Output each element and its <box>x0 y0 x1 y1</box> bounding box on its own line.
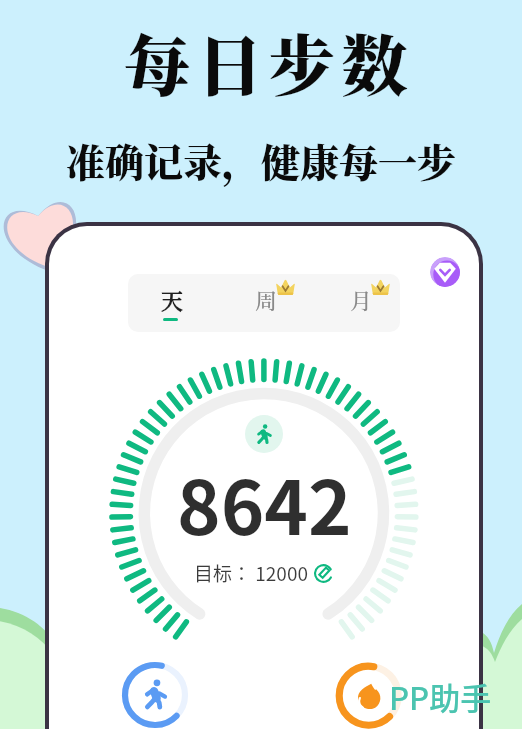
staticText: 每日步数 <box>124 14 414 109</box>
button[interactable]: Start walking <box>120 660 190 729</box>
button[interactable]: Edit step goal <box>313 563 334 584</box>
staticText: 8642 <box>177 449 352 556</box>
staticText: 月 <box>350 284 373 316</box>
staticText: 天 <box>161 284 184 316</box>
staticText: 目标： 12000 <box>194 559 308 587</box>
button[interactable]: 月 <box>341 274 397 332</box>
staticText: 准确记录，健康每一步 <box>66 132 457 188</box>
button[interactable]: 周 <box>246 274 302 332</box>
staticText: 周 <box>255 284 278 316</box>
staticText: PP助手 <box>389 674 492 719</box>
button[interactable]: 天 <box>152 274 188 332</box>
button[interactable]: VIP membership <box>430 257 460 287</box>
